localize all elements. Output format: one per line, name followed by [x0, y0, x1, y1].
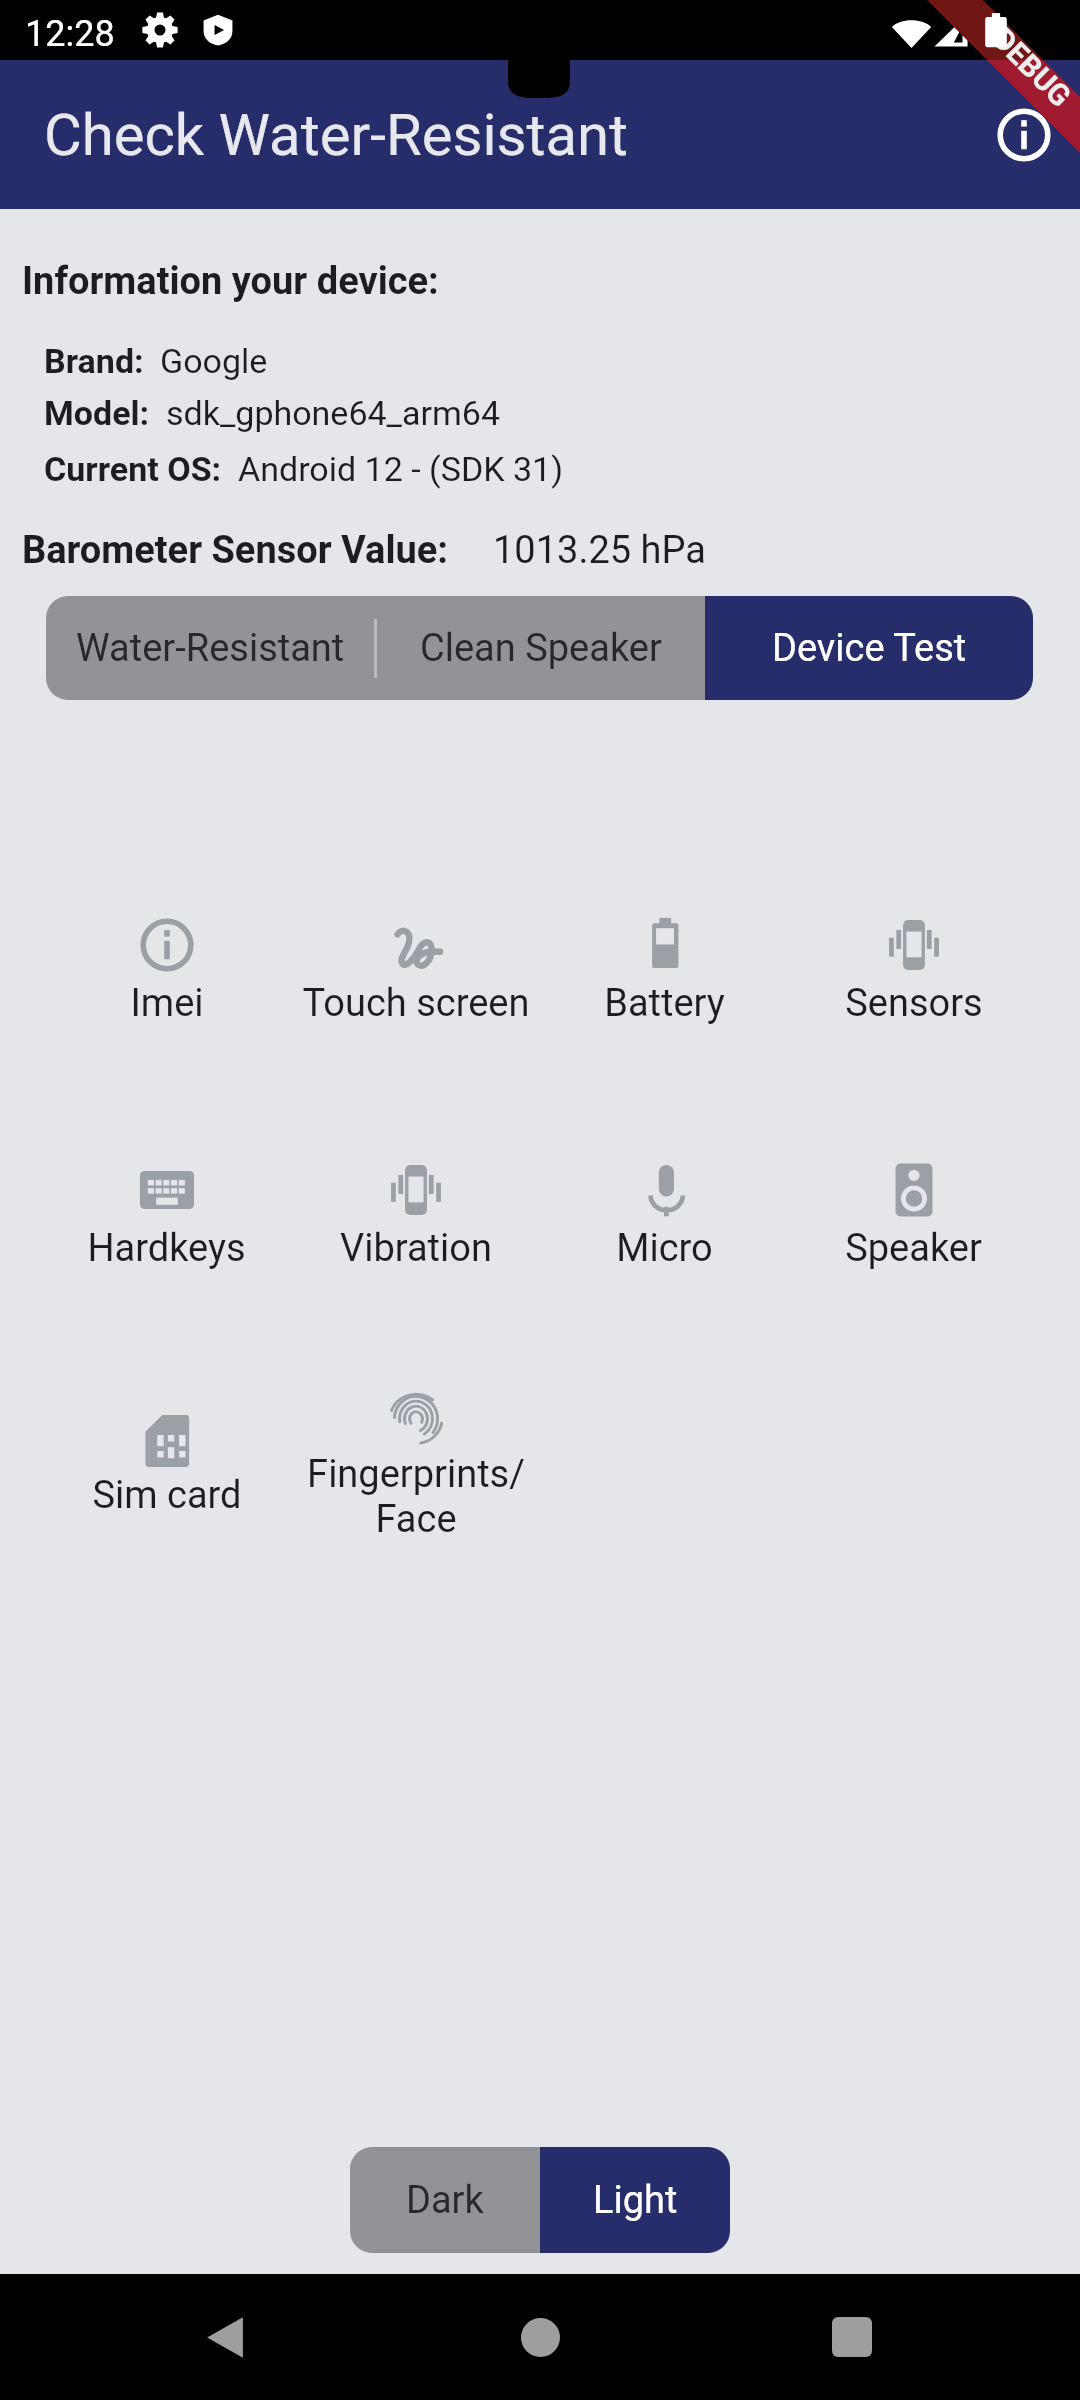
- staticText: Brand:: [44, 341, 144, 381]
- button[interactable]: Dark: [350, 2147, 540, 2253]
- button[interactable]: Imei: [42, 896, 291, 1046]
- button[interactable]: Fingerprints/ Face: [291, 1388, 540, 1538]
- staticText: Clean Speaker: [420, 626, 662, 671]
- staticText: Sim card: [92, 1473, 242, 1518]
- staticText: Micro: [616, 1226, 713, 1271]
- button[interactable]: Back: [183, 2295, 267, 2379]
- staticText: sdk_gphone64_arm64: [166, 393, 501, 433]
- staticText: DEBUG: [986, 21, 1078, 114]
- button[interactable]: Light: [540, 2147, 730, 2253]
- button[interactable]: Clean Speaker: [377, 596, 705, 700]
- staticText: Hardkeys: [87, 1226, 246, 1271]
- staticText: Light: [593, 2178, 678, 2223]
- staticText: Current OS:: [44, 449, 222, 489]
- staticText: Imei: [130, 981, 204, 1026]
- button[interactable]: Hardkeys: [42, 1141, 291, 1291]
- staticText: Speaker: [845, 1226, 982, 1271]
- button[interactable]: Micro: [540, 1141, 789, 1291]
- staticText: Battery: [604, 981, 725, 1026]
- staticText: Android 12 - (SDK 31): [238, 449, 564, 489]
- staticText: Dark: [406, 2178, 484, 2223]
- button[interactable]: Info: [986, 97, 1062, 173]
- staticText: Barometer Sensor Value:: [22, 528, 449, 573]
- button[interactable]: Vibration: [291, 1141, 540, 1291]
- staticText: Fingerprints/ Face: [307, 1452, 525, 1538]
- staticText: 1013.25 hPa: [493, 528, 706, 573]
- button[interactable]: Device Test: [705, 596, 1033, 700]
- staticText: Water-Resistant: [76, 626, 345, 671]
- button[interactable]: Sensors: [789, 896, 1038, 1046]
- button[interactable]: Speaker: [789, 1141, 1038, 1291]
- button[interactable]: Home: [498, 2295, 582, 2379]
- staticText: Device Test: [772, 626, 967, 671]
- staticText: Check Water-Resistant: [44, 101, 629, 169]
- staticText: Sensors: [845, 981, 983, 1026]
- staticText: Information your device:: [22, 259, 439, 304]
- button[interactable]: Touch screen: [291, 896, 540, 1046]
- button[interactable]: Sim card: [42, 1388, 291, 1538]
- staticText: Touch screen: [302, 981, 530, 1026]
- button[interactable]: Recent apps: [810, 2295, 894, 2379]
- button[interactable]: Battery: [540, 896, 789, 1046]
- staticText: 12:28: [25, 13, 115, 55]
- staticText: Vibration: [340, 1226, 492, 1271]
- staticText: Google: [160, 341, 268, 381]
- button[interactable]: Water-Resistant: [46, 596, 374, 700]
- staticText: Model:: [44, 393, 150, 433]
